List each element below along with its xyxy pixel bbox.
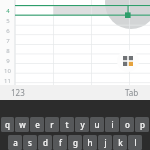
staticText: 10 [4, 67, 11, 75]
staticText: l [134, 137, 137, 148]
staticText: w [19, 119, 26, 130]
button[interactable]: q [1, 117, 14, 132]
staticText: 8 [6, 47, 10, 55]
button[interactable]: 123 [0, 85, 36, 100]
staticText: q [5, 119, 10, 130]
staticText: u [94, 119, 100, 130]
button[interactable]: w [15, 117, 29, 132]
staticText: t [65, 119, 69, 130]
button[interactable]: a [8, 135, 22, 150]
staticText: r [50, 119, 54, 130]
staticText: h [87, 137, 93, 148]
button[interactable]: l [128, 135, 142, 150]
staticText: p [140, 119, 145, 130]
button[interactable]: o [120, 117, 134, 132]
staticText: i [111, 119, 114, 130]
staticText: f [59, 137, 62, 148]
button[interactable]: f [53, 135, 67, 150]
button[interactable]: i [105, 117, 119, 132]
staticText: y [80, 119, 85, 130]
staticText: 9 [6, 57, 10, 65]
button[interactable]: d [38, 135, 52, 150]
button[interactable]: g [68, 135, 82, 150]
staticText: Tab [125, 87, 139, 98]
staticText: k [118, 137, 123, 148]
button[interactable]: t [60, 117, 74, 132]
button[interactable]: p [135, 117, 149, 132]
staticText: d [43, 137, 48, 148]
button[interactable]: r [45, 117, 59, 132]
staticText: 7 [6, 37, 10, 45]
staticText: e [35, 119, 40, 130]
staticText: j [104, 137, 107, 148]
button[interactable]: h [83, 135, 97, 150]
staticText: 11 [4, 77, 11, 85]
staticText: 6 [6, 27, 10, 35]
button[interactable]: j [98, 135, 112, 150]
staticText: 5 [6, 17, 10, 25]
staticText: g [73, 137, 78, 148]
button[interactable]: e [30, 117, 44, 132]
staticText: 4 [6, 7, 10, 15]
staticText: o [125, 119, 130, 130]
button[interactable]: Tab [114, 85, 150, 100]
button[interactable]: u [90, 117, 104, 132]
button[interactable]: k [113, 135, 127, 150]
staticText: s [28, 137, 32, 148]
button[interactable]: y [75, 117, 89, 132]
button[interactable]: Cell options [117, 50, 139, 72]
button[interactable]: s [23, 135, 37, 150]
staticText: 123 [11, 87, 25, 98]
staticText: a [13, 137, 18, 148]
